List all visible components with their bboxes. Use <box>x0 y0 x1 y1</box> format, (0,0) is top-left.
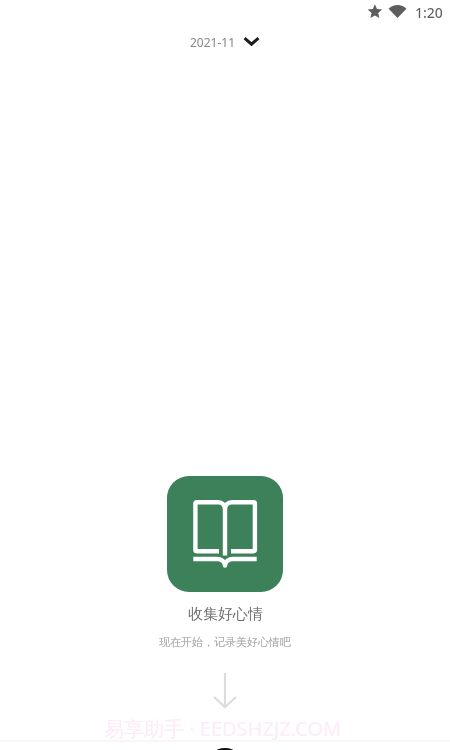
button[interactable]: Add record <box>207 748 243 750</box>
button[interactable]: 收集好心情 <box>167 476 283 592</box>
staticText: 现在开始，记录美好心情吧 <box>159 635 291 649</box>
staticText: 收集好心情 <box>188 605 263 624</box>
button[interactable]: 2021-11 <box>184 31 265 53</box>
staticText: 1:20 <box>415 3 443 22</box>
staticText: 易享助手 · EEDSHZJZ.COM <box>104 715 342 742</box>
staticText: 2021-11 <box>190 34 236 50</box>
